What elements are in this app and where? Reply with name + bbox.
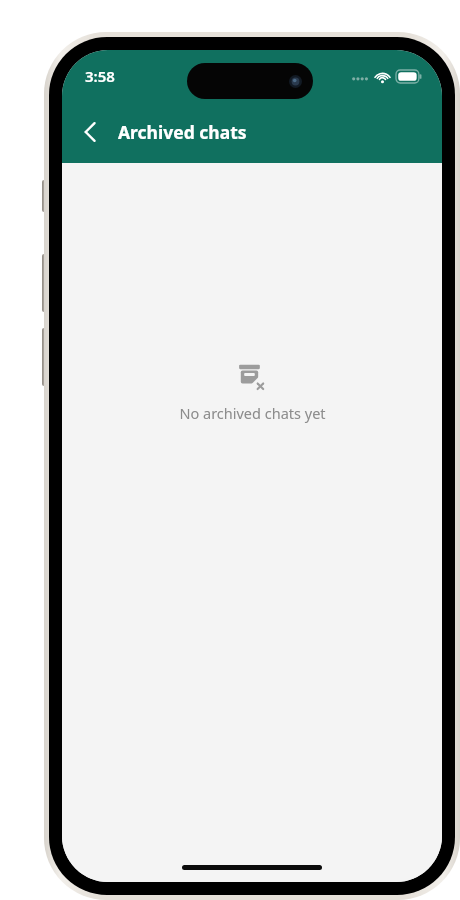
other: Volume up — [42, 254, 46, 312]
staticText: No archived chats yet — [179, 403, 326, 423]
other: Action button — [42, 180, 46, 212]
staticText: 3:58 — [85, 66, 115, 86]
staticText: Archived chats — [118, 120, 247, 144]
other: Volume down — [42, 328, 46, 386]
button[interactable]: Back — [68, 110, 112, 154]
